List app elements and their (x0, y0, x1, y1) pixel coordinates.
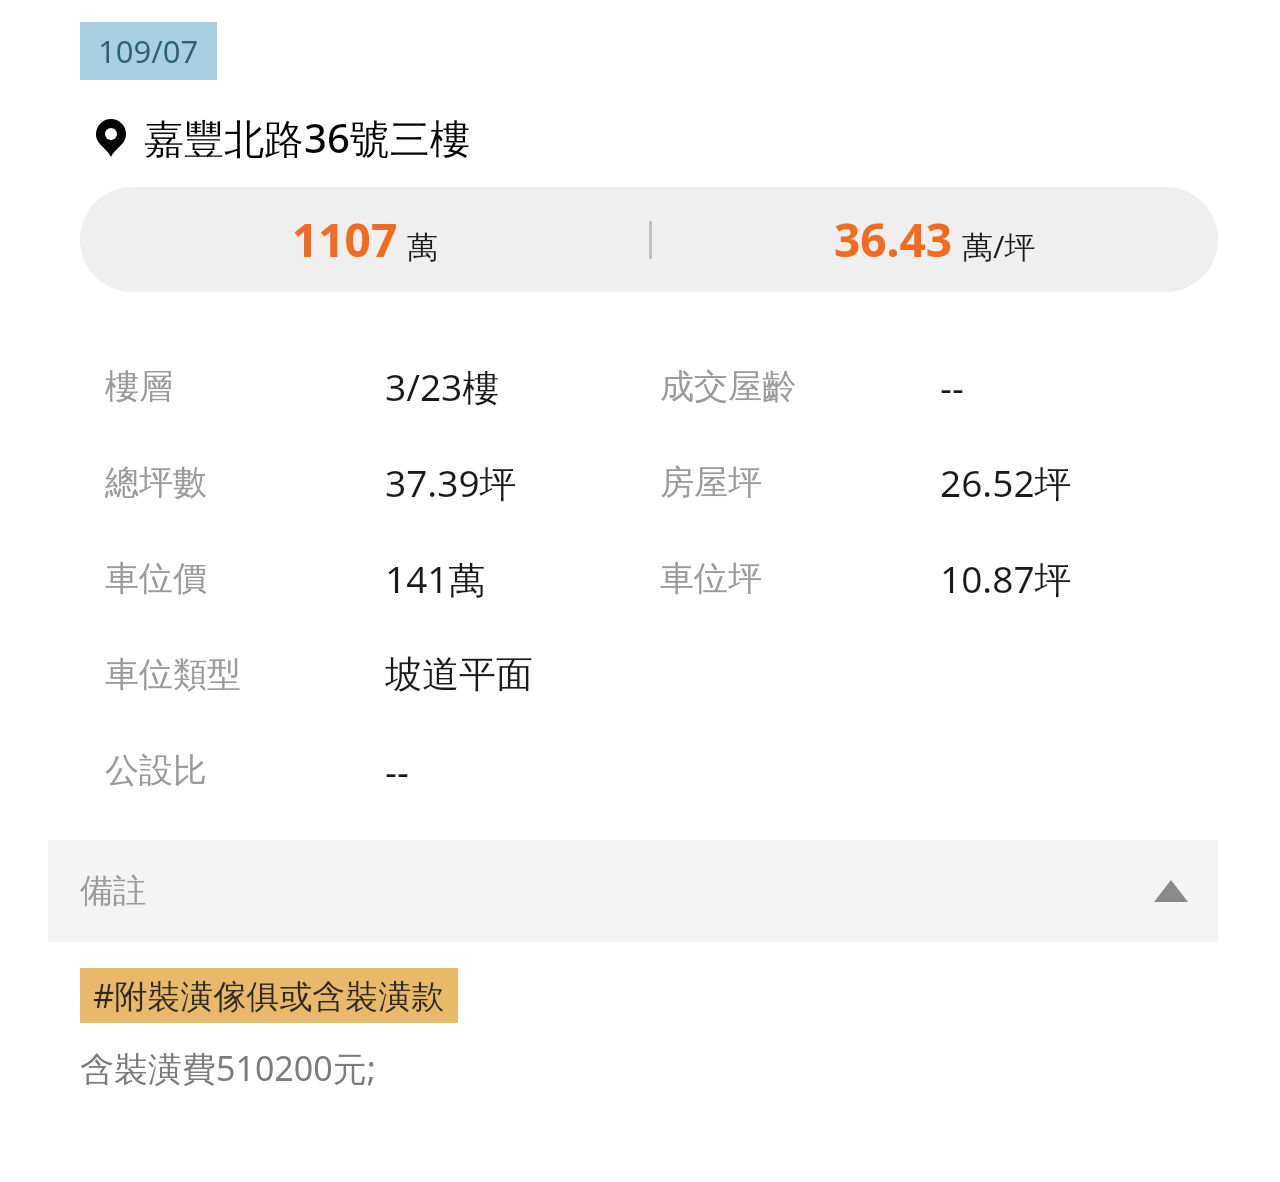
button[interactable]: Location (0, 110, 1280, 165)
staticText: 總坪數 (105, 461, 207, 504)
staticText: 含裝潢費510200元; (80, 1045, 376, 1091)
staticText: 車位類型 (105, 653, 241, 696)
staticText: -- (940, 361, 964, 411)
staticText: 成交屋齡 (660, 365, 796, 408)
staticText: 坡道平面 (385, 651, 533, 698)
other: Collapse remarks (1154, 880, 1188, 902)
staticText: 樓層 (105, 365, 173, 408)
staticText: 109/07 (98, 30, 199, 72)
staticText: 萬/坪 (962, 225, 1036, 267)
button[interactable]: #附裝潢傢俱或含裝潢款 (80, 968, 458, 1023)
staticText: 公設比 (105, 749, 207, 792)
staticText: 房屋坪 (660, 461, 762, 504)
staticText: 36.43 (834, 208, 953, 271)
other: Location (96, 119, 126, 157)
button[interactable]: 109/07 (80, 22, 217, 80)
staticText: 37.39坪 (385, 457, 517, 508)
staticText: 備註 (80, 870, 146, 912)
staticText: -- (385, 745, 409, 795)
staticText: 嘉豐北路36號三樓 (144, 110, 470, 165)
staticText: 車位價 (105, 557, 207, 600)
button[interactable]: 1107 (80, 187, 1218, 292)
staticText: 141萬 (385, 553, 486, 604)
staticText: 車位坪 (660, 557, 762, 600)
staticText: 3/23樓 (385, 361, 500, 412)
staticText: 萬 (407, 228, 438, 267)
staticText: #附裝潢傢俱或含裝潢款 (93, 973, 445, 1018)
staticText: 10.87坪 (940, 553, 1072, 604)
staticText: 26.52坪 (940, 457, 1072, 508)
staticText: 1107 (292, 208, 398, 271)
button[interactable]: 備註 (48, 840, 1218, 942)
